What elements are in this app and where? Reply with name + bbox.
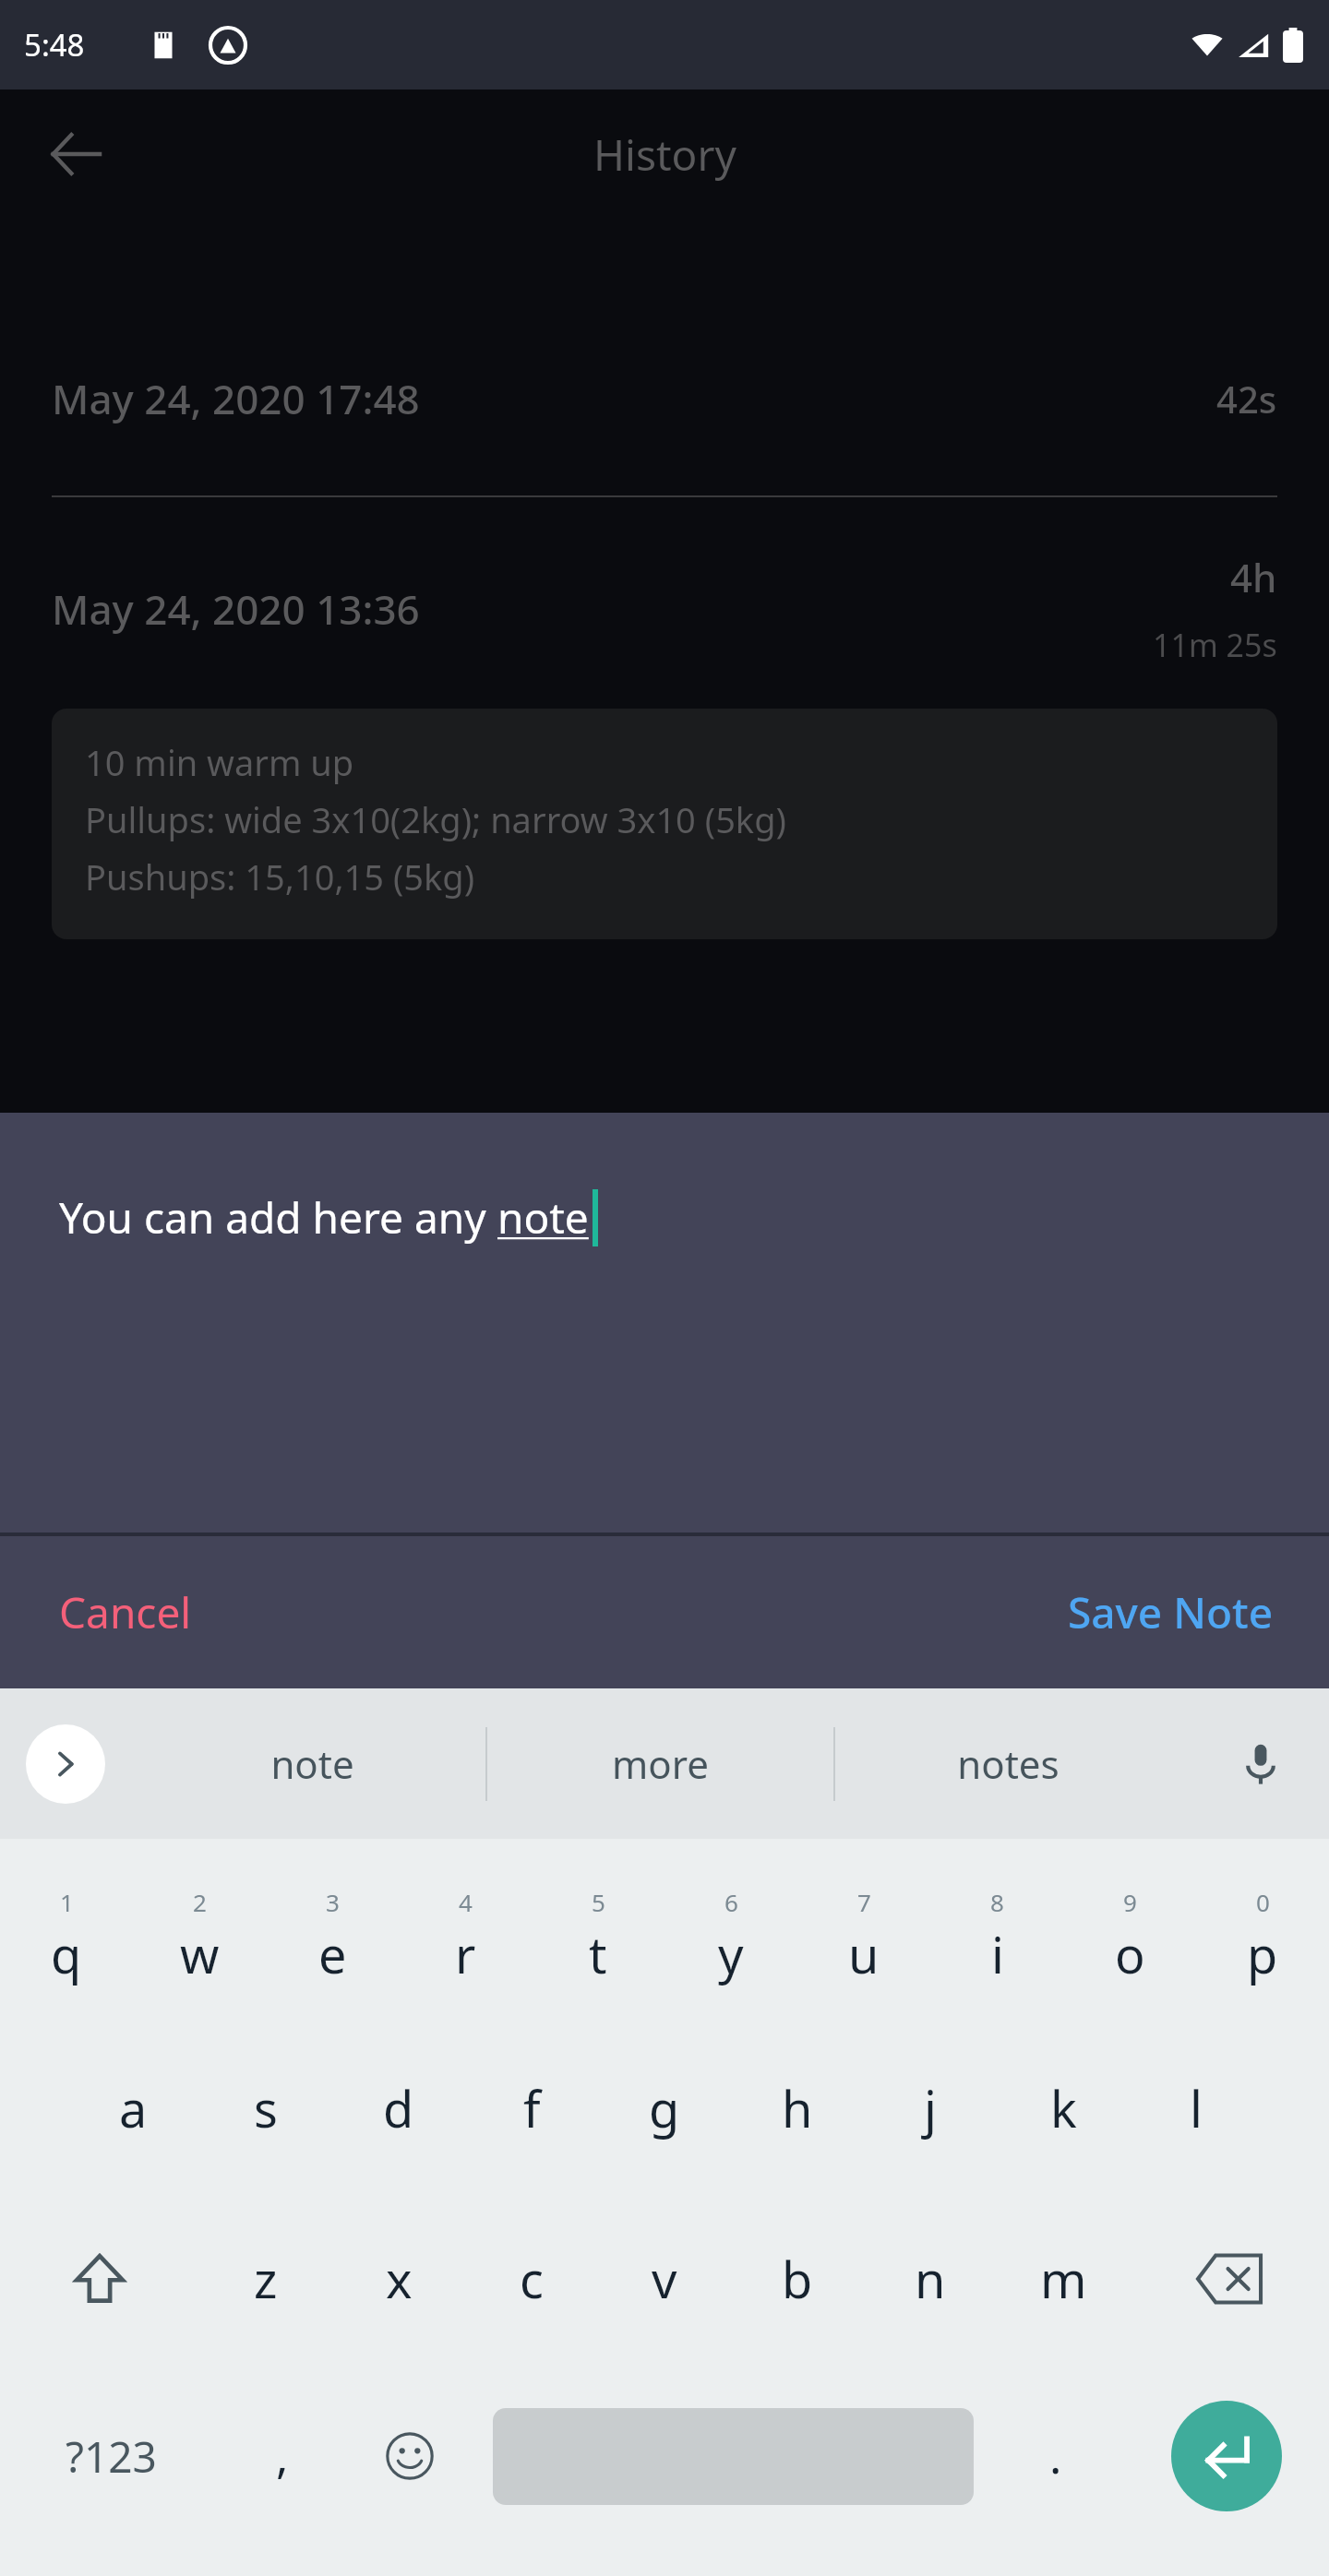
- button[interactable]: k: [997, 2022, 1130, 2193]
- button[interactable]: v: [598, 2193, 731, 2364]
- button[interactable]: 7: [797, 1852, 930, 2022]
- staticText: c: [520, 2245, 544, 2313]
- button[interactable]: Voice input: [1224, 1727, 1298, 1801]
- button[interactable]: 4: [399, 1852, 532, 2022]
- staticText: May 24, 2020 17:48: [52, 371, 420, 426]
- staticText: a: [119, 2074, 148, 2142]
- button[interactable]: b: [731, 2193, 864, 2364]
- button[interactable]: Emoji: [342, 2364, 477, 2548]
- staticText: May 24, 2020 13:36: [52, 581, 420, 637]
- staticText: 4h: [1230, 551, 1277, 603]
- staticText: note: [497, 1188, 589, 1246]
- staticText: n: [915, 2245, 946, 2313]
- staticText: ,: [276, 2425, 289, 2487]
- button[interactable]: More suggestions: [26, 1724, 105, 1804]
- staticText: Save Note: [1068, 1583, 1274, 1641]
- button[interactable]: f: [465, 2022, 598, 2193]
- staticText: more: [612, 1737, 709, 1790]
- button[interactable]: 0: [1196, 1852, 1329, 2022]
- button[interactable]: Shift: [0, 2193, 199, 2364]
- button[interactable]: Backspace: [1130, 2193, 1329, 2364]
- staticText: j: [924, 2074, 937, 2142]
- staticText: Pullups: wide 3x10(2kg); narrow 3x10 (5k…: [85, 795, 786, 843]
- staticText: z: [254, 2245, 278, 2313]
- staticText: i: [991, 1920, 1004, 1988]
- staticText: g: [649, 2074, 680, 2142]
- button[interactable]: h: [731, 2022, 864, 2193]
- staticText: y: [718, 1920, 744, 1988]
- staticText: w: [180, 1920, 220, 1988]
- staticText: d: [383, 2074, 414, 2142]
- button[interactable]: Save Note: [1031, 1565, 1329, 1660]
- staticText: 11m 25s: [1153, 624, 1277, 666]
- staticText: ?123: [66, 2427, 157, 2486]
- staticText: 6: [724, 1886, 738, 1918]
- button[interactable]: 1: [0, 1852, 133, 2022]
- button[interactable]: Enter: [1123, 2364, 1329, 2548]
- button[interactable]: c: [465, 2193, 598, 2364]
- staticText: Pushups: 15,10,15 (5kg): [85, 853, 475, 900]
- staticText: x: [386, 2245, 413, 2313]
- button[interactable]: j: [864, 2022, 997, 2193]
- staticText: h: [782, 2074, 813, 2142]
- staticText: .: [1049, 2425, 1062, 2487]
- button[interactable]: .: [988, 2364, 1123, 2548]
- staticText: 10 min warm up: [85, 738, 354, 786]
- staticText: 9: [1123, 1886, 1137, 1918]
- staticText: l: [1190, 2074, 1203, 2142]
- staticText: note: [270, 1737, 354, 1790]
- staticText: 5: [592, 1886, 605, 1918]
- button[interactable]: l: [1130, 2022, 1263, 2193]
- staticText: 7: [857, 1886, 871, 1918]
- staticText: m: [1040, 2245, 1087, 2313]
- staticText: 42s: [1216, 374, 1277, 423]
- button[interactable]: z: [199, 2193, 332, 2364]
- staticText: b: [782, 2245, 813, 2313]
- button[interactable]: May 24, 2020 17:48: [0, 348, 1329, 449]
- staticText: notes: [957, 1737, 1060, 1790]
- staticText: t: [589, 1920, 607, 1988]
- staticText: Cancel: [59, 1583, 192, 1641]
- button[interactable]: ,: [221, 2364, 342, 2548]
- button[interactable]: Space: [477, 2364, 988, 2548]
- button[interactable]: x: [332, 2193, 465, 2364]
- button[interactable]: notes: [835, 1688, 1181, 1839]
- button[interactable]: m: [997, 2193, 1130, 2364]
- staticText: 2: [193, 1886, 207, 1918]
- staticText: s: [254, 2074, 278, 2142]
- staticText: p: [1247, 1920, 1278, 1988]
- staticText: 8: [990, 1886, 1004, 1918]
- staticText: You can add here any: [59, 1188, 497, 1246]
- staticText: 1: [60, 1886, 74, 1918]
- button[interactable]: 3: [266, 1852, 399, 2022]
- staticText: v: [652, 2245, 677, 2313]
- staticText: k: [1050, 2074, 1077, 2142]
- button[interactable]: Cancel: [0, 1565, 229, 1660]
- staticText: q: [51, 1920, 82, 1988]
- button[interactable]: May 24, 2020 13:36: [0, 551, 1329, 666]
- button[interactable]: s: [199, 2022, 332, 2193]
- button[interactable]: 9: [1063, 1852, 1196, 2022]
- staticText: r: [455, 1920, 476, 1988]
- button[interactable]: 6: [664, 1852, 797, 2022]
- staticText: 5:48: [24, 24, 85, 66]
- button[interactable]: 5: [532, 1852, 664, 2022]
- button[interactable]: more: [487, 1688, 833, 1839]
- button[interactable]: n: [864, 2193, 997, 2364]
- staticText: 3: [326, 1886, 340, 1918]
- button[interactable]: ?123: [0, 2364, 221, 2548]
- staticText: History: [593, 125, 736, 184]
- button[interactable]: note: [138, 1688, 485, 1839]
- button[interactable]: d: [332, 2022, 465, 2193]
- button[interactable]: a: [66, 2022, 199, 2193]
- staticText: f: [523, 2074, 541, 2142]
- button[interactable]: 8: [930, 1852, 1063, 2022]
- button[interactable]: 10 min warm up: [52, 709, 1277, 939]
- button[interactable]: g: [598, 2022, 731, 2193]
- button[interactable]: Back: [31, 110, 120, 198]
- staticText: e: [318, 1920, 347, 1988]
- button[interactable]: 2: [133, 1852, 266, 2022]
- staticText: u: [848, 1920, 880, 1988]
- staticText: 4: [459, 1886, 473, 1918]
- button[interactable]: You can add here any: [0, 1113, 1329, 1532]
